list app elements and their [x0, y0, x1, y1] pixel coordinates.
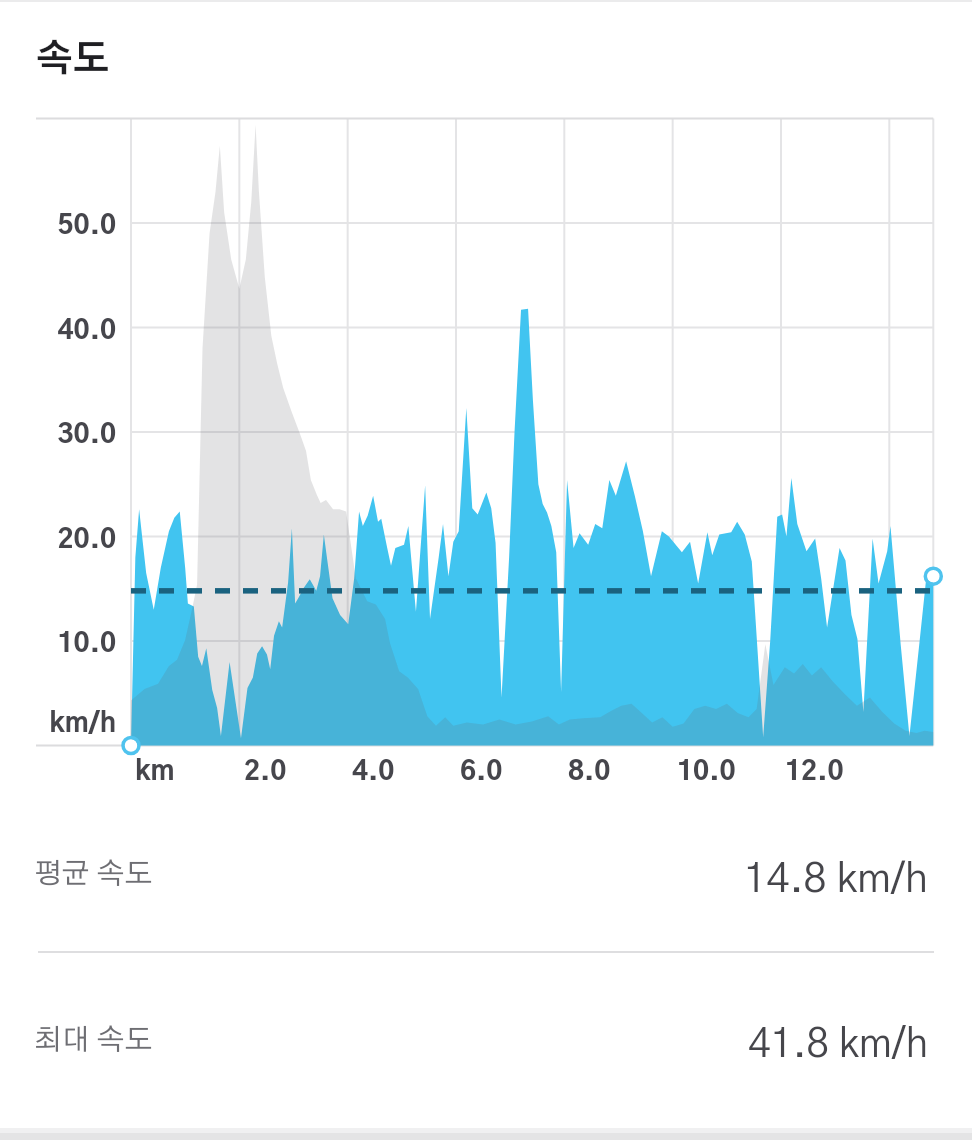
staticText: 속도 — [36, 41, 110, 78]
staticText: 12.0 — [785, 758, 844, 785]
staticText: 2.0 — [244, 758, 287, 785]
staticText: 4.0 — [352, 758, 395, 785]
staticText: 6.0 — [460, 758, 503, 785]
staticText: 40.0 — [0, 317, 116, 344]
staticText: 10.0 — [0, 630, 116, 657]
staticText: km/h — [0, 710, 116, 737]
staticText: km — [135, 758, 175, 785]
button[interactable] — [0, 996, 972, 1096]
staticText: 41.8 km/h — [0, 1025, 928, 1065]
staticText: 최대 속도 — [34, 1026, 153, 1055]
staticText: 50.0 — [0, 212, 116, 239]
staticText: 8.0 — [568, 758, 611, 785]
staticText: 10.0 — [677, 758, 736, 785]
staticText: 14.8 km/h — [0, 859, 928, 900]
staticText: 20.0 — [0, 526, 116, 553]
staticText: 평균 속도 — [34, 860, 153, 889]
button[interactable] — [0, 830, 972, 930]
staticText: 30.0 — [0, 421, 116, 448]
